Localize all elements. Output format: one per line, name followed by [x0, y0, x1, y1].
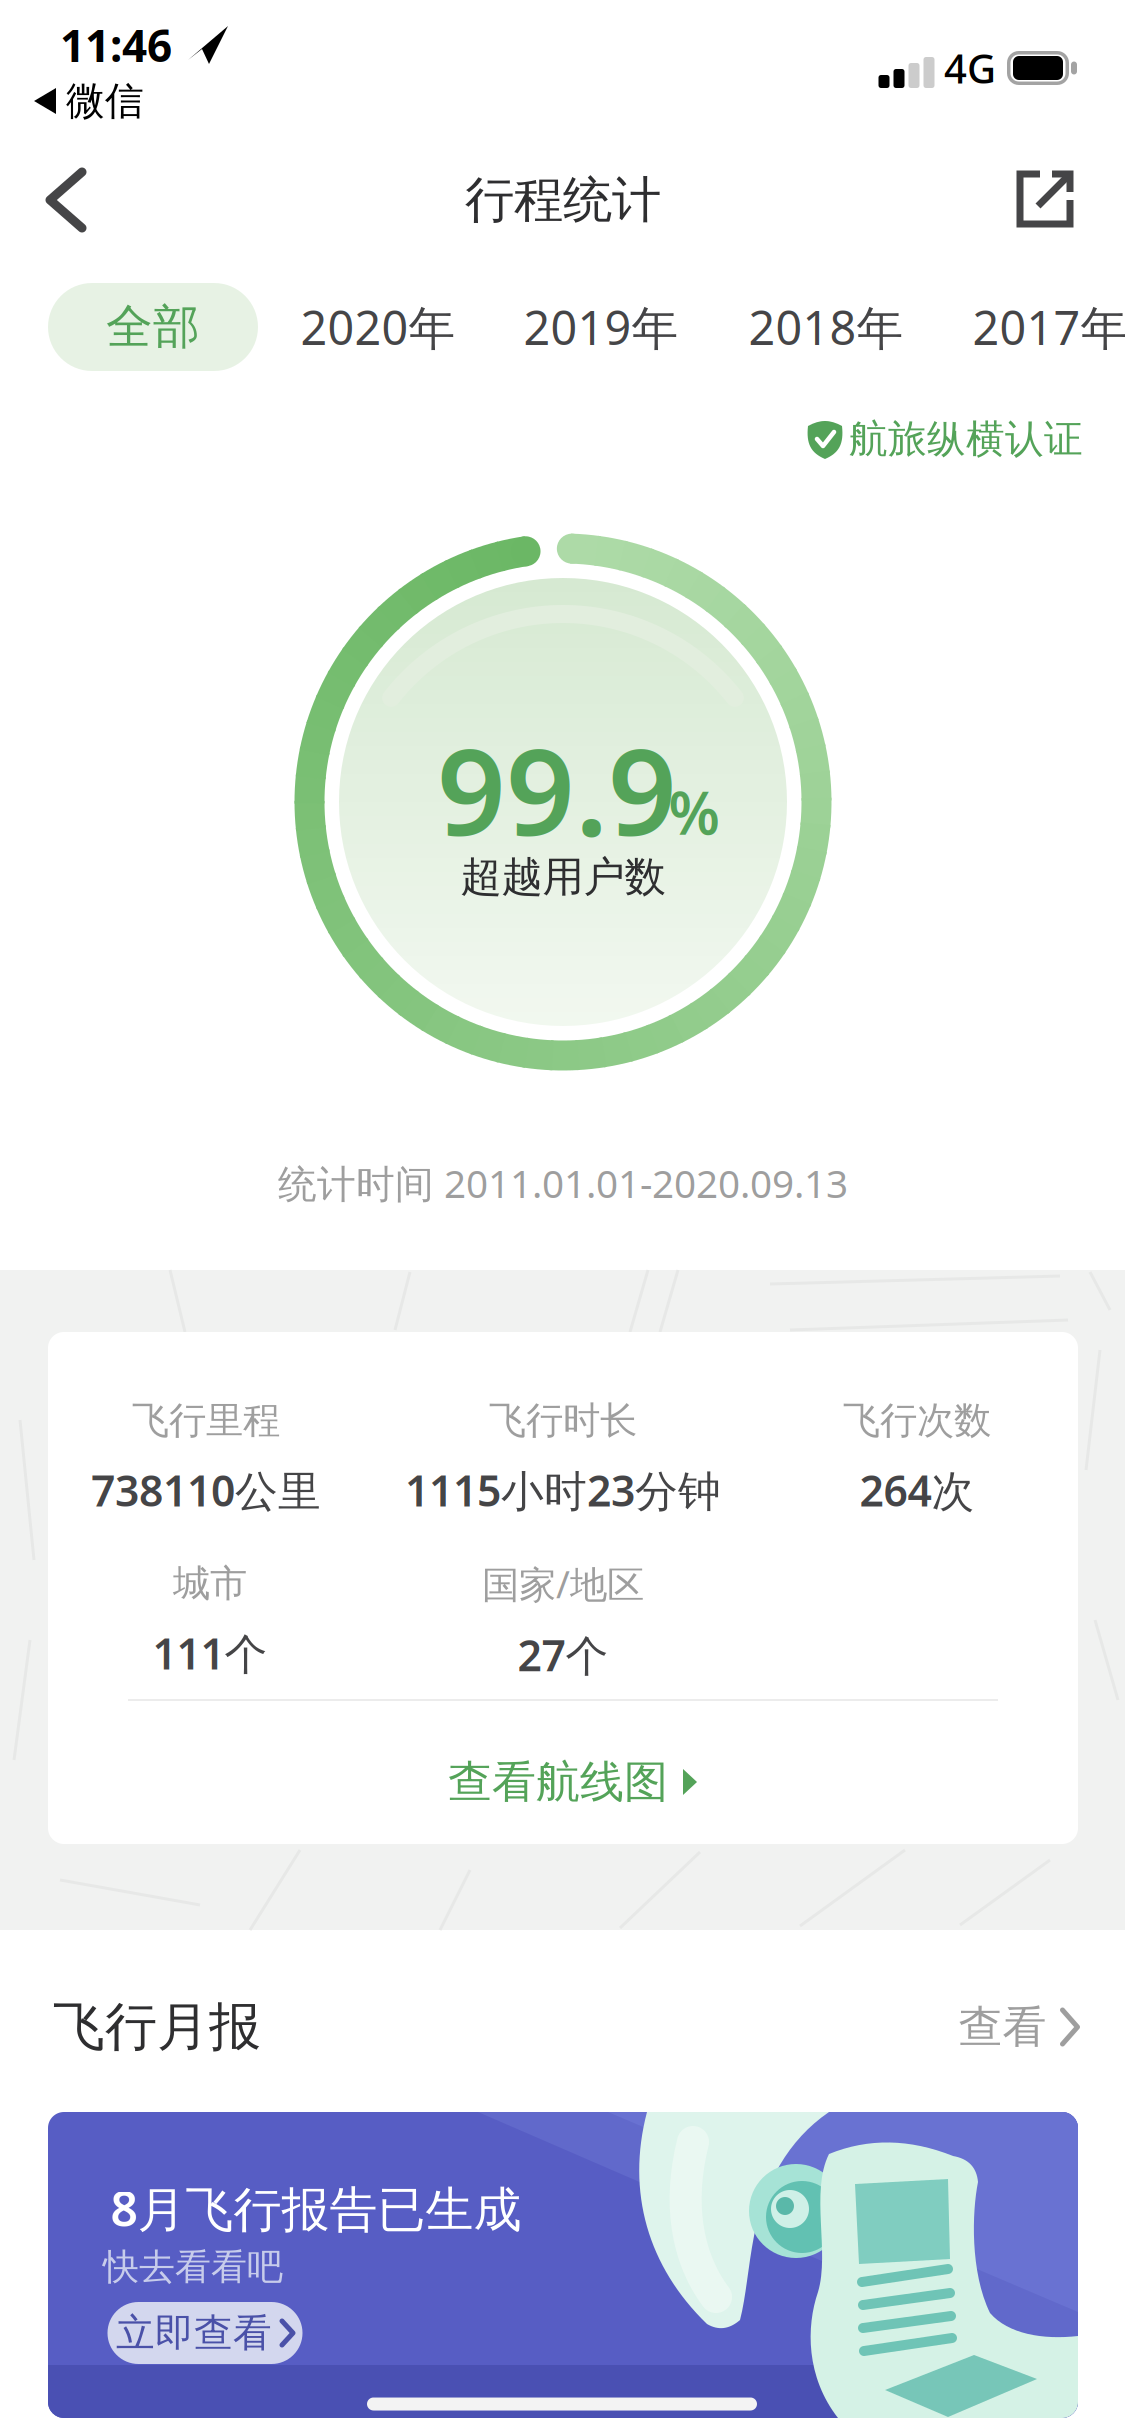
staticText: 飞行里程	[132, 1398, 280, 1444]
button[interactable]: 查看航线图	[393, 1737, 753, 1827]
staticText: 查看航线图	[448, 1755, 668, 1809]
button[interactable]: 2017年	[945, 283, 1125, 371]
button[interactable]: 2019年	[496, 283, 706, 371]
staticText: 全部	[106, 298, 200, 356]
staticText: 立即查看	[116, 2309, 272, 2357]
button[interactable]: 全部	[48, 283, 258, 371]
button[interactable]: 8月飞行报告已生成	[48, 2112, 1078, 2418]
staticText: 超越用户数	[460, 852, 665, 902]
staticText: 快去看看吧	[103, 2245, 283, 2289]
staticText: 飞行次数	[843, 1398, 991, 1444]
button[interactable]: 2020年	[273, 283, 483, 371]
staticText: 2019年	[523, 296, 678, 358]
staticText: 99.9	[437, 709, 677, 869]
staticText: 城市	[173, 1561, 247, 1607]
staticText: 264次	[859, 1462, 974, 1518]
staticText: 4G	[944, 41, 996, 94]
staticText: 飞行月报	[53, 1995, 261, 2059]
staticText: 738110公里	[91, 1462, 321, 1518]
button[interactable]	[1016, 170, 1074, 228]
staticText: 国家/地区	[482, 1559, 644, 1608]
staticText: 统计时间 2011.01.01-2020.09.13	[278, 1157, 848, 1209]
button[interactable]: 查看	[928, 1987, 1108, 2067]
staticText: 微信	[66, 77, 144, 125]
staticText: 航旅纵横认证	[849, 415, 1083, 463]
staticText: 2018年	[748, 296, 903, 358]
button[interactable]: 2018年	[721, 283, 931, 371]
button[interactable]: 立即查看	[107, 2302, 302, 2364]
staticText: 111个	[152, 1625, 267, 1681]
staticText: 11:46	[60, 16, 172, 74]
staticText: 8月飞行报告已生成	[110, 2176, 521, 2240]
staticText: 行程统计	[465, 170, 661, 230]
staticText: %	[668, 773, 719, 851]
staticText: 1115小时23分钟	[405, 1462, 721, 1518]
staticText: 2020年	[300, 296, 455, 358]
staticText: 2017年	[972, 296, 1125, 358]
staticText: 27个	[517, 1626, 608, 1683]
staticText: 飞行时长	[489, 1398, 637, 1444]
button[interactable]	[20, 166, 112, 234]
staticText: 查看	[958, 2000, 1046, 2054]
